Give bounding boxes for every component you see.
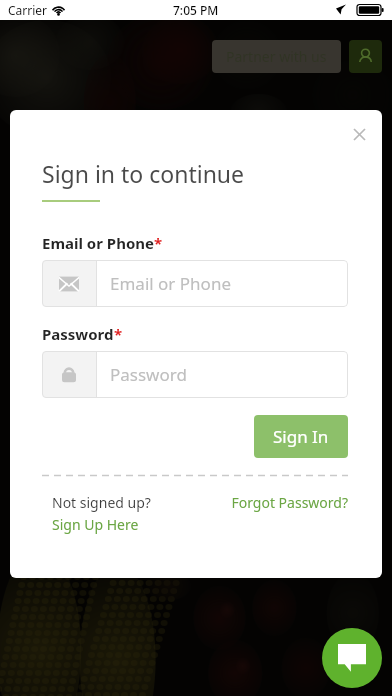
button[interactable]: Sign Up Here <box>52 515 139 534</box>
button[interactable]: Close <box>344 119 374 149</box>
staticText: Not signed up? <box>52 493 151 512</box>
button[interactable]: Email or Phone <box>42 260 348 307</box>
staticText: Sign in to continue <box>42 158 245 189</box>
button[interactable]: Chat <box>322 628 382 688</box>
staticText: Email or Phone <box>110 272 231 295</box>
button[interactable]: Sign In <box>254 415 348 458</box>
staticText: Partner with us <box>226 47 327 66</box>
staticText: * <box>114 324 123 344</box>
staticText: * <box>154 233 163 253</box>
staticText: Carrier <box>8 2 48 18</box>
staticText: Sign Up Here <box>52 515 139 534</box>
staticText: Sign In <box>273 425 329 448</box>
staticText: Password <box>42 324 114 344</box>
staticText: Password <box>110 363 187 386</box>
staticText: Forgot Password? <box>231 493 348 512</box>
button[interactable]: Account <box>349 40 382 73</box>
staticText: Email or Phone <box>42 233 154 253</box>
button[interactable]: Password <box>42 351 348 398</box>
staticText: 7:05 PM <box>173 2 219 18</box>
button[interactable]: Forgot Password? <box>231 493 348 512</box>
